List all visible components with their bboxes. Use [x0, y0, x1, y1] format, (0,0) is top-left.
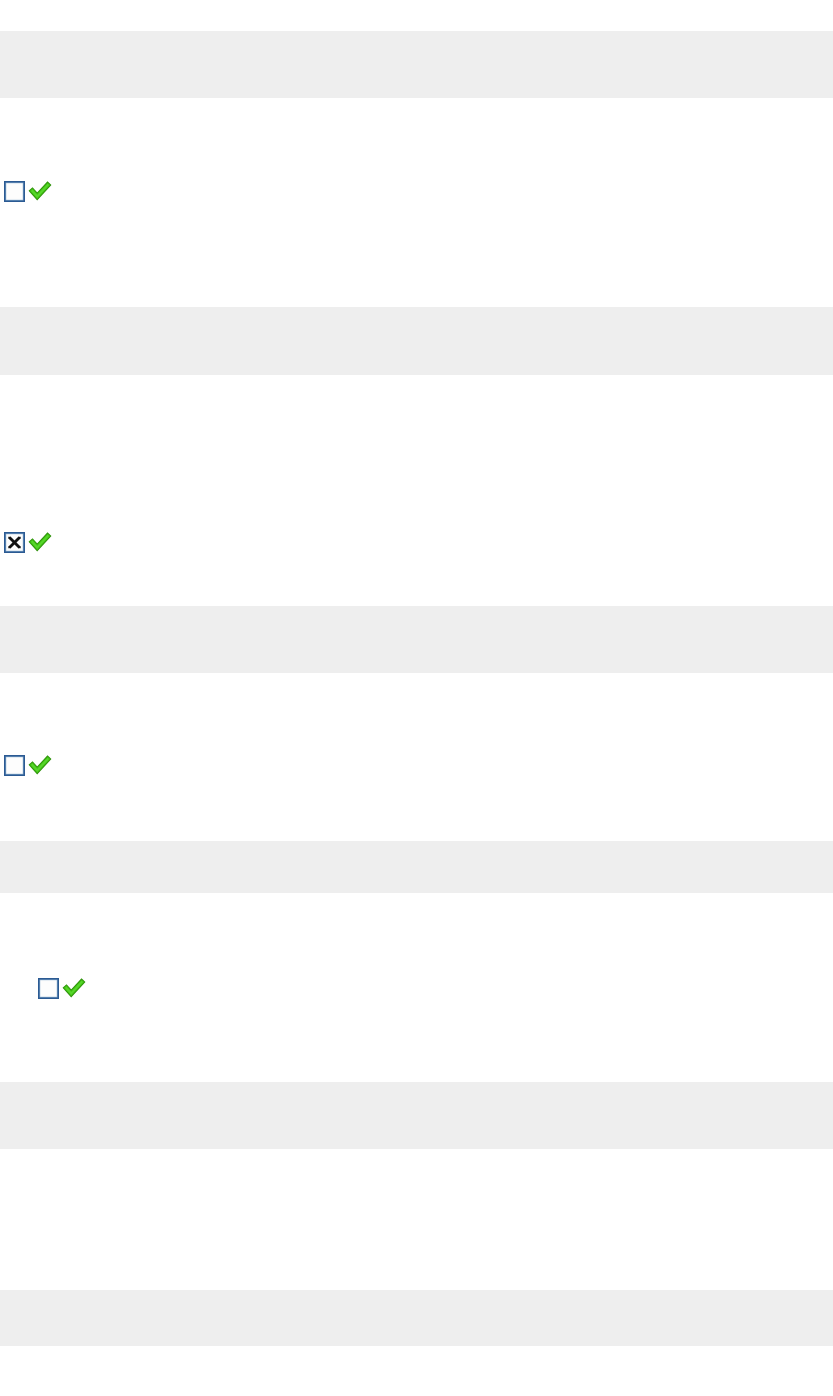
button[interactable]: Valid [31, 182, 49, 200]
button[interactable]: Valid [65, 979, 83, 997]
button[interactable]: Valid [31, 533, 49, 551]
button[interactable]: Checkbox [38, 978, 59, 999]
button[interactable]: Valid [31, 756, 49, 774]
button[interactable]: Checkbox, image missing [4, 532, 25, 553]
button[interactable]: Checkbox [4, 755, 25, 776]
button[interactable]: Checkbox [4, 181, 25, 202]
